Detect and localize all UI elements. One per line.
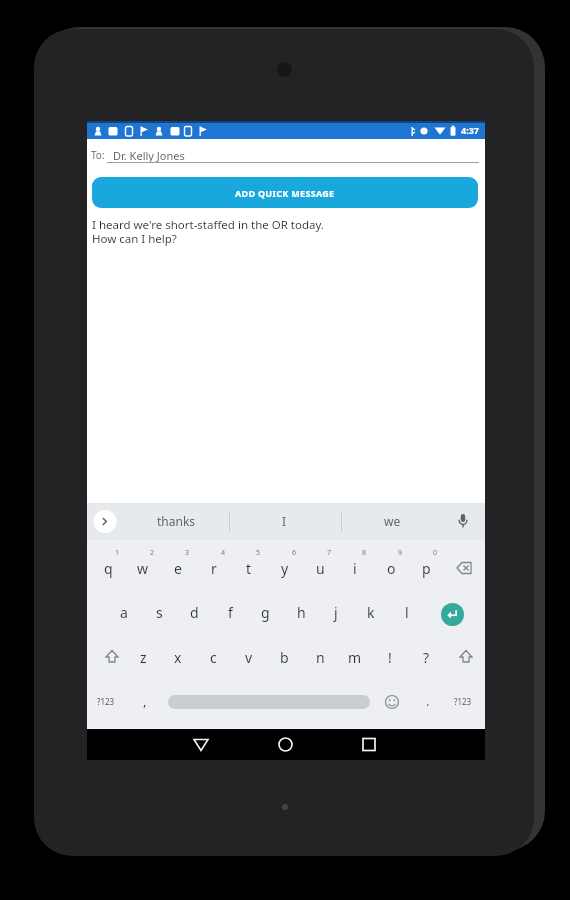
button[interactable]: i — [295, 554, 415, 582]
button[interactable]: ADD QUICK MESSAGE — [92, 177, 478, 208]
staticText: 4:37 — [461, 124, 479, 136]
button[interactable]: y — [225, 554, 345, 582]
staticText: d — [190, 603, 199, 622]
button[interactable]: e — [118, 554, 238, 582]
button[interactable]: v — [189, 643, 309, 671]
staticText: ? — [423, 648, 430, 667]
staticText: f — [228, 603, 233, 622]
button[interactable]: u — [260, 554, 380, 582]
button[interactable] — [349, 729, 389, 760]
staticText: n — [316, 648, 325, 667]
button[interactable]: k — [311, 598, 431, 626]
staticText: o — [387, 559, 396, 578]
staticText: j — [334, 603, 338, 622]
staticText: i — [353, 559, 357, 578]
staticText: r — [211, 559, 217, 578]
staticText: m — [348, 648, 362, 667]
staticText: 0 — [433, 548, 438, 558]
staticText: v — [245, 648, 253, 667]
staticText: y — [281, 559, 289, 578]
button[interactable]: I — [224, 507, 344, 535]
button[interactable]: c — [153, 643, 273, 671]
button[interactable]: f — [170, 598, 290, 626]
staticText: g — [261, 603, 270, 622]
button[interactable]: b — [224, 643, 344, 671]
button[interactable]: g — [205, 598, 325, 626]
button[interactable]: h — [241, 598, 361, 626]
staticText: 7 — [327, 548, 332, 558]
button[interactable] — [265, 729, 305, 760]
staticText: 5 — [256, 548, 261, 558]
staticText: a — [120, 603, 128, 622]
staticText: 3 — [185, 548, 190, 558]
staticText: . — [426, 692, 430, 710]
button[interactable]: w — [83, 554, 203, 582]
button[interactable]: n — [260, 643, 380, 671]
staticText: ?123 — [454, 696, 472, 707]
staticText: we — [384, 513, 401, 529]
staticText: q — [104, 559, 113, 578]
button[interactable]: m — [295, 643, 415, 671]
staticText: e — [174, 559, 182, 578]
button[interactable]: l — [347, 598, 467, 626]
button[interactable]: r — [154, 554, 274, 582]
button[interactable]: p — [366, 554, 486, 582]
staticText: 8 — [362, 548, 367, 558]
staticText: k — [367, 603, 375, 622]
button[interactable]: q — [48, 554, 168, 582]
staticText: u — [316, 559, 325, 578]
staticText: s — [156, 603, 163, 622]
button[interactable] — [441, 603, 464, 626]
button[interactable]: d — [134, 598, 254, 626]
staticText: h — [297, 603, 306, 622]
staticText: I heard we're short-staffed in the OR to… — [92, 217, 324, 247]
staticText: z — [140, 648, 147, 667]
button[interactable]: j — [276, 598, 396, 626]
staticText: ! — [388, 648, 392, 667]
staticText: 6 — [292, 548, 297, 558]
staticText: 2 — [150, 548, 155, 558]
staticText: 4 — [221, 548, 226, 558]
button[interactable]: ?123 — [403, 687, 523, 715]
staticText: x — [174, 648, 182, 667]
button[interactable] — [181, 729, 221, 760]
button[interactable]: thanks — [116, 507, 236, 535]
staticText: thanks — [157, 513, 196, 529]
staticText: To: — [91, 148, 105, 162]
button[interactable] — [168, 695, 370, 709]
button[interactable]: ? — [366, 643, 486, 671]
button[interactable]: . — [368, 687, 488, 715]
button[interactable]: , — [85, 687, 205, 715]
staticText: b — [280, 648, 289, 667]
button[interactable]: a — [64, 598, 184, 626]
staticText: , — [143, 692, 147, 710]
staticText: 9 — [398, 548, 403, 558]
staticText: p — [422, 559, 431, 578]
staticText: ADD QUICK MESSAGE — [235, 187, 335, 199]
button[interactable] — [87, 141, 479, 165]
button[interactable]: ! — [330, 643, 450, 671]
button[interactable]: x — [118, 643, 238, 671]
staticText: t — [246, 559, 252, 578]
button[interactable]: t — [189, 554, 309, 582]
staticText: c — [210, 648, 217, 667]
staticText: Dr. Kelly Jones — [113, 148, 185, 163]
staticText: ?123 — [97, 696, 115, 707]
button[interactable]: ?123 — [46, 687, 166, 715]
button[interactable]: s — [99, 598, 219, 626]
button[interactable]: o — [331, 554, 451, 582]
staticText: 1 — [115, 548, 120, 558]
button[interactable]: z — [83, 643, 203, 671]
staticText: I — [282, 513, 287, 529]
staticText: w — [137, 559, 149, 578]
button[interactable]: we — [332, 507, 452, 535]
staticText: l — [405, 603, 409, 622]
